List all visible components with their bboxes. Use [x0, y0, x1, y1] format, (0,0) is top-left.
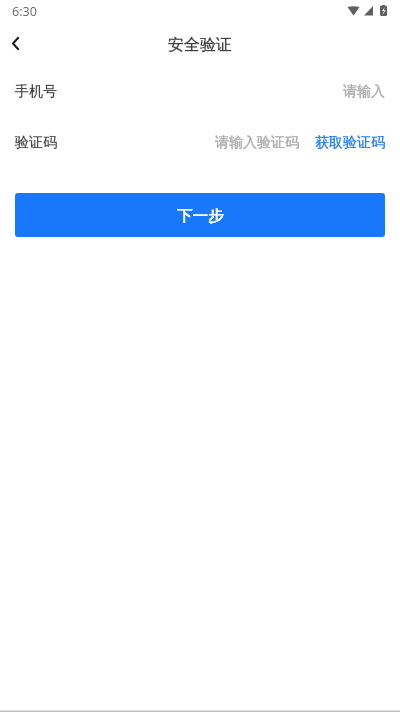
staticText: 安全验证 [168, 35, 232, 55]
staticText: 请输入验证码 [215, 134, 299, 152]
button[interactable]: 手机号 [0, 66, 400, 117]
staticText: 请输入验证码 [215, 134, 299, 152]
button[interactable]: 下一步 [15, 193, 385, 237]
staticText: 6:30 [12, 3, 37, 20]
button[interactable]: 获取验证码 [315, 134, 385, 152]
staticText: 验证码 [15, 134, 57, 152]
staticText: 验证码 [15, 134, 57, 152]
staticText: 请输入 [343, 83, 385, 101]
button[interactable]: Back [0, 24, 31, 66]
staticText: 下一步 [177, 206, 224, 226]
staticText: 获取验证码 [315, 134, 385, 152]
staticText: 安全验证 [168, 35, 232, 55]
staticText: 获取验证码 [315, 134, 385, 152]
staticText: 请输入 [343, 83, 385, 101]
staticText: 下一步 [177, 206, 224, 226]
button[interactable]: 验证码 [0, 117, 400, 168]
staticText: 手机号 [15, 83, 57, 101]
staticText: 手机号 [15, 83, 57, 101]
